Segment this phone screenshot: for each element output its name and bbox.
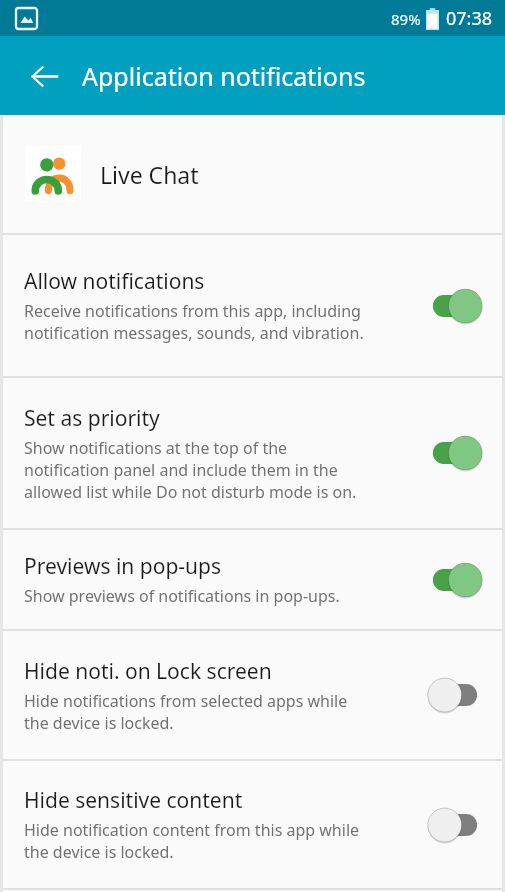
- staticText: Previews in pop-ups: [24, 552, 222, 581]
- button[interactable]: Back: [18, 50, 70, 102]
- staticText: the device is locked.: [24, 841, 174, 863]
- staticText: Set as priority: [24, 404, 160, 433]
- staticText: allowed list while Do not disturb mode i…: [24, 481, 357, 503]
- staticText: 07:38: [446, 6, 493, 31]
- button[interactable]: Previews in pop-ups: [3, 530, 502, 629]
- button[interactable]: Set as priority, on: [426, 432, 484, 474]
- staticText: Hide sensitive content: [24, 786, 243, 815]
- staticText: Application notifications: [82, 59, 366, 93]
- staticText: Hide noti. on Lock screen: [24, 657, 272, 686]
- staticText: Receive notifications from this app, inc…: [24, 300, 361, 322]
- staticText: Show notifications at the top of the: [24, 437, 288, 459]
- button[interactable]: Hide noti. on Lock screen: [3, 631, 502, 759]
- button[interactable]: Hide sensitive content, off: [426, 804, 484, 846]
- button[interactable]: Set as priority: [3, 378, 502, 528]
- staticText: notification panel and include them in t…: [24, 459, 338, 481]
- staticText: Live Chat: [100, 159, 199, 190]
- staticText: Show previews of notifications in pop-up…: [24, 585, 340, 607]
- button[interactable]: Allow notifications, on: [426, 285, 484, 327]
- staticText: Hide notifications from selected apps wh…: [24, 690, 348, 712]
- staticText: Allow notifications: [24, 267, 205, 296]
- button[interactable]: Allow notifications: [3, 235, 502, 376]
- staticText: 89%: [391, 9, 421, 29]
- staticText: Hide notification content from this app …: [24, 819, 360, 841]
- button[interactable]: Hide sensitive content: [3, 761, 502, 888]
- button[interactable]: Previews in pop-ups, on: [426, 559, 484, 601]
- staticText: the device is locked.: [24, 712, 174, 734]
- staticText: notification messages, sounds, and vibra…: [24, 322, 364, 344]
- button[interactable]: Hide noti. on Lock screen, off: [426, 674, 484, 716]
- button[interactable]: Live Chat: [3, 115, 502, 233]
